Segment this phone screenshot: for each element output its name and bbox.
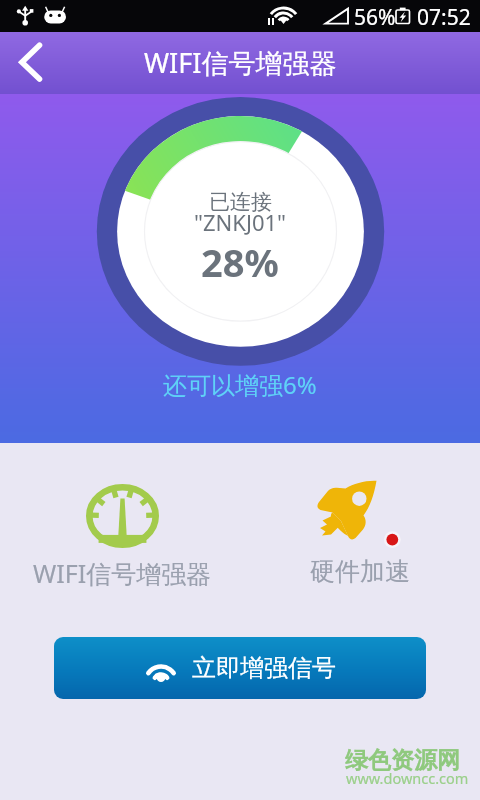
button[interactable]: 立即增强信号	[54, 637, 426, 699]
staticText: WIFI信号增强器	[144, 44, 337, 81]
staticText: www.downcc.com	[346, 768, 469, 788]
staticText: 07:52	[417, 3, 471, 32]
button[interactable]: 硬件加速	[300, 556, 420, 587]
staticText: 还可以增强6%	[163, 368, 317, 401]
button[interactable]: Back	[0, 32, 60, 94]
staticText: WIFI信号增强器	[33, 556, 212, 590]
button[interactable]	[316, 476, 404, 548]
staticText: "ZNKJ01"	[194, 207, 287, 237]
staticText: 绿色资源网	[345, 746, 460, 775]
staticText: 硬件加速	[310, 556, 410, 587]
staticText: 立即增强信号	[192, 653, 336, 683]
staticText: 28%	[201, 236, 279, 288]
staticText: 56%	[354, 3, 396, 32]
staticText: 已连接	[209, 189, 272, 215]
button[interactable]: WIFI信号增强器	[22, 484, 222, 590]
